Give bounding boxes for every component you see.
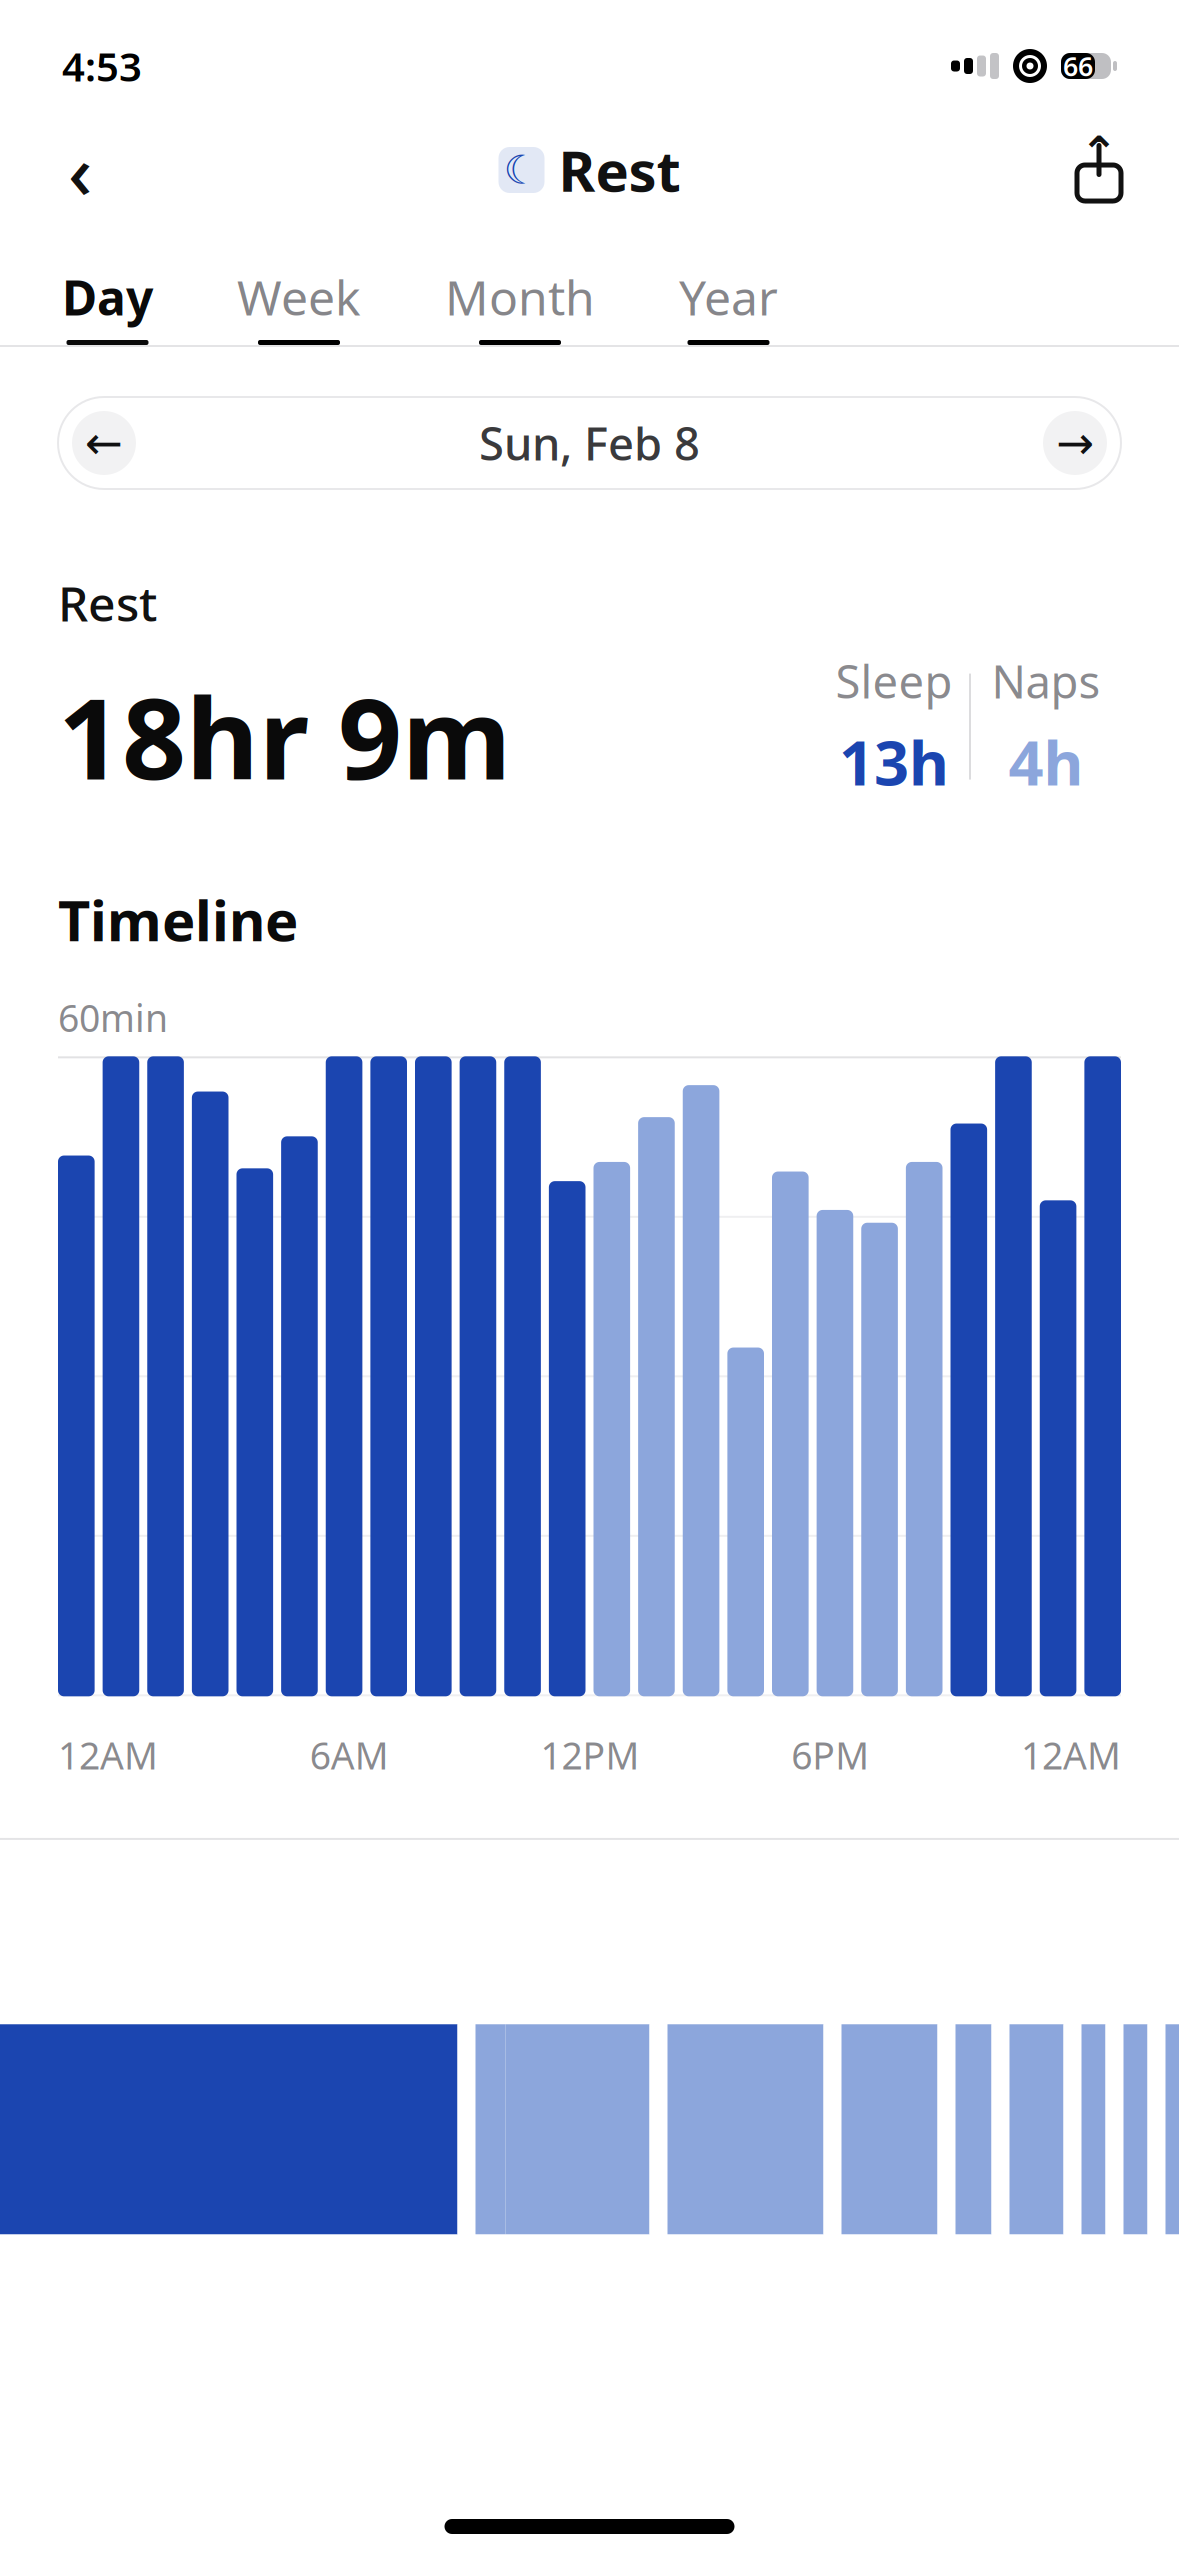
staticText: Rest — [558, 133, 680, 207]
button[interactable]: Year — [665, 254, 792, 345]
button[interactable]: Day — [48, 254, 167, 345]
staticText: ‹ — [68, 120, 92, 220]
staticText: 66 — [1063, 48, 1093, 84]
staticText: Naps — [991, 651, 1100, 711]
button[interactable]: Next day — [1043, 411, 1107, 475]
staticText: 6PM — [791, 1730, 869, 1780]
staticText: 60min — [58, 993, 168, 1042]
staticText: Rest — [58, 571, 157, 635]
staticText: 18hr 9m — [58, 662, 511, 810]
staticText: → — [1056, 417, 1094, 469]
staticText: 12AM — [1021, 1730, 1121, 1780]
staticText: 4h — [1008, 721, 1083, 802]
staticText: Sleep — [835, 651, 952, 711]
staticText: ← — [85, 417, 123, 469]
button[interactable]: Week — [223, 254, 375, 345]
staticText: 4:53 — [62, 39, 142, 92]
staticText: Day — [62, 265, 153, 329]
staticText: Timeline — [58, 882, 298, 957]
button[interactable]: Back — [38, 128, 122, 212]
button[interactable]: Month — [431, 254, 609, 345]
staticText: 6AM — [310, 1730, 389, 1780]
staticText: Year — [679, 265, 778, 329]
staticText: 12AM — [58, 1730, 158, 1780]
button[interactable]: Share — [1057, 128, 1141, 212]
button[interactable]: Previous day — [72, 411, 136, 475]
staticText: ⌃ — [1080, 127, 1118, 179]
staticText: ☾ — [503, 147, 539, 193]
staticText: Sun, Feb 8 — [479, 413, 700, 473]
staticText: 13h — [839, 721, 949, 802]
staticText: Week — [237, 265, 361, 329]
staticText: Month — [445, 265, 595, 329]
staticText: 12PM — [540, 1730, 639, 1780]
